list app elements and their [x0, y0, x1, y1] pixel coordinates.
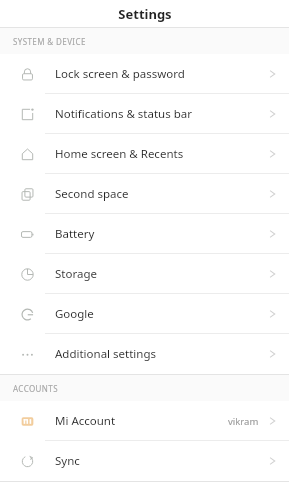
- staticText: Sync: [55, 453, 80, 469]
- staticText: Mi Account: [55, 413, 116, 429]
- staticText: Home screen & Recents: [55, 146, 184, 162]
- staticText: vikram: [228, 415, 259, 428]
- button[interactable]: Sync: [0, 441, 289, 481]
- staticText: Settings: [118, 5, 172, 23]
- staticText: Lock screen & password: [55, 66, 185, 82]
- staticText: SYSTEM & DEVICE: [13, 36, 86, 47]
- button[interactable]: Battery: [0, 214, 289, 254]
- staticText: Second space: [55, 186, 129, 202]
- staticText: Notifications & status bar: [55, 106, 192, 122]
- button[interactable]: Mi Account: [0, 401, 289, 441]
- button[interactable]: Lock screen & password: [0, 54, 289, 94]
- staticText: Storage: [55, 266, 97, 282]
- button[interactable]: Google: [0, 294, 289, 334]
- button[interactable]: Notifications & status bar: [0, 94, 289, 134]
- staticText: ACCOUNTS: [13, 383, 58, 394]
- staticText: Battery: [55, 226, 95, 242]
- staticText: Additional settings: [55, 346, 157, 362]
- staticText: Google: [55, 306, 94, 322]
- button[interactable]: Additional settings: [0, 334, 289, 374]
- button[interactable]: Storage: [0, 254, 289, 294]
- button[interactable]: Home screen & Recents: [0, 134, 289, 174]
- button[interactable]: Second space: [0, 174, 289, 214]
